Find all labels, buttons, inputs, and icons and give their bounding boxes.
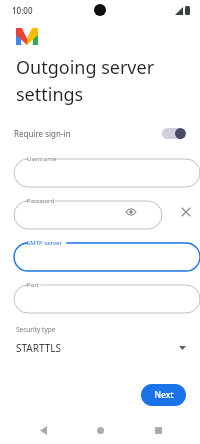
staticText: SMTP server bbox=[27, 239, 62, 247]
staticText: Security type bbox=[16, 325, 56, 334]
button[interactable]: Home bbox=[85, 416, 115, 444]
staticText: 10:00 bbox=[12, 5, 33, 16]
staticText: settings bbox=[16, 82, 84, 107]
staticText: Next bbox=[154, 389, 174, 401]
button[interactable]: Password bbox=[14, 195, 162, 229]
button[interactable]: Clear password bbox=[178, 204, 194, 220]
button[interactable]: Require sign-in bbox=[0, 121, 200, 145]
other: Open security type dropdown bbox=[179, 346, 186, 350]
button[interactable]: Username bbox=[14, 153, 200, 187]
button[interactable]: Next bbox=[141, 384, 186, 406]
button[interactable]: Port bbox=[14, 279, 200, 313]
staticText: STARTTLS bbox=[16, 341, 62, 355]
button[interactable]: Back bbox=[28, 416, 58, 444]
button[interactable]: Show password bbox=[124, 205, 138, 219]
staticText: Password bbox=[27, 197, 55, 205]
button[interactable]: Security type bbox=[0, 325, 200, 355]
button[interactable]: Recent apps bbox=[143, 416, 173, 444]
staticText: Outgoing server bbox=[16, 55, 155, 80]
button[interactable]: SMTP server bbox=[14, 237, 200, 271]
staticText: Username bbox=[27, 155, 57, 163]
staticText: Port bbox=[27, 281, 39, 289]
staticText: Require sign-in bbox=[14, 128, 71, 139]
